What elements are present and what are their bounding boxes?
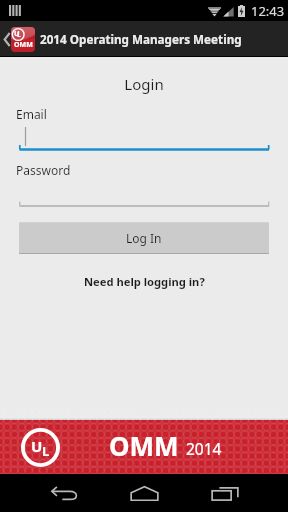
- button[interactable]: Recent apps: [201, 474, 249, 512]
- staticText: Email: [16, 106, 47, 122]
- staticText: 2014 Operating Managers Meeting: [40, 31, 242, 47]
- staticText: Login: [0, 74, 288, 94]
- staticText: OMM: [14, 40, 33, 50]
- button[interactable]: Home: [120, 474, 168, 512]
- staticText: 12:43: [251, 2, 285, 20]
- button[interactable]: Back: [40, 474, 88, 512]
- staticText: Password: [16, 162, 71, 178]
- staticText: U: [31, 436, 43, 456]
- button[interactable]: Need help logging in?: [78, 270, 211, 293]
- staticText: L: [17, 30, 21, 39]
- button[interactable]: Navigate up: [0, 21, 35, 57]
- staticText: Log In: [126, 230, 162, 246]
- staticText: OMM: [109, 428, 179, 463]
- button[interactable]: [0, 120, 288, 150]
- staticText: Need help logging in?: [84, 274, 205, 289]
- staticText: U: [14, 28, 20, 38]
- button[interactable]: [0, 177, 288, 207]
- button[interactable]: Log In: [19, 222, 269, 254]
- staticText: L: [42, 442, 50, 460]
- staticText: 2014: [186, 438, 222, 459]
